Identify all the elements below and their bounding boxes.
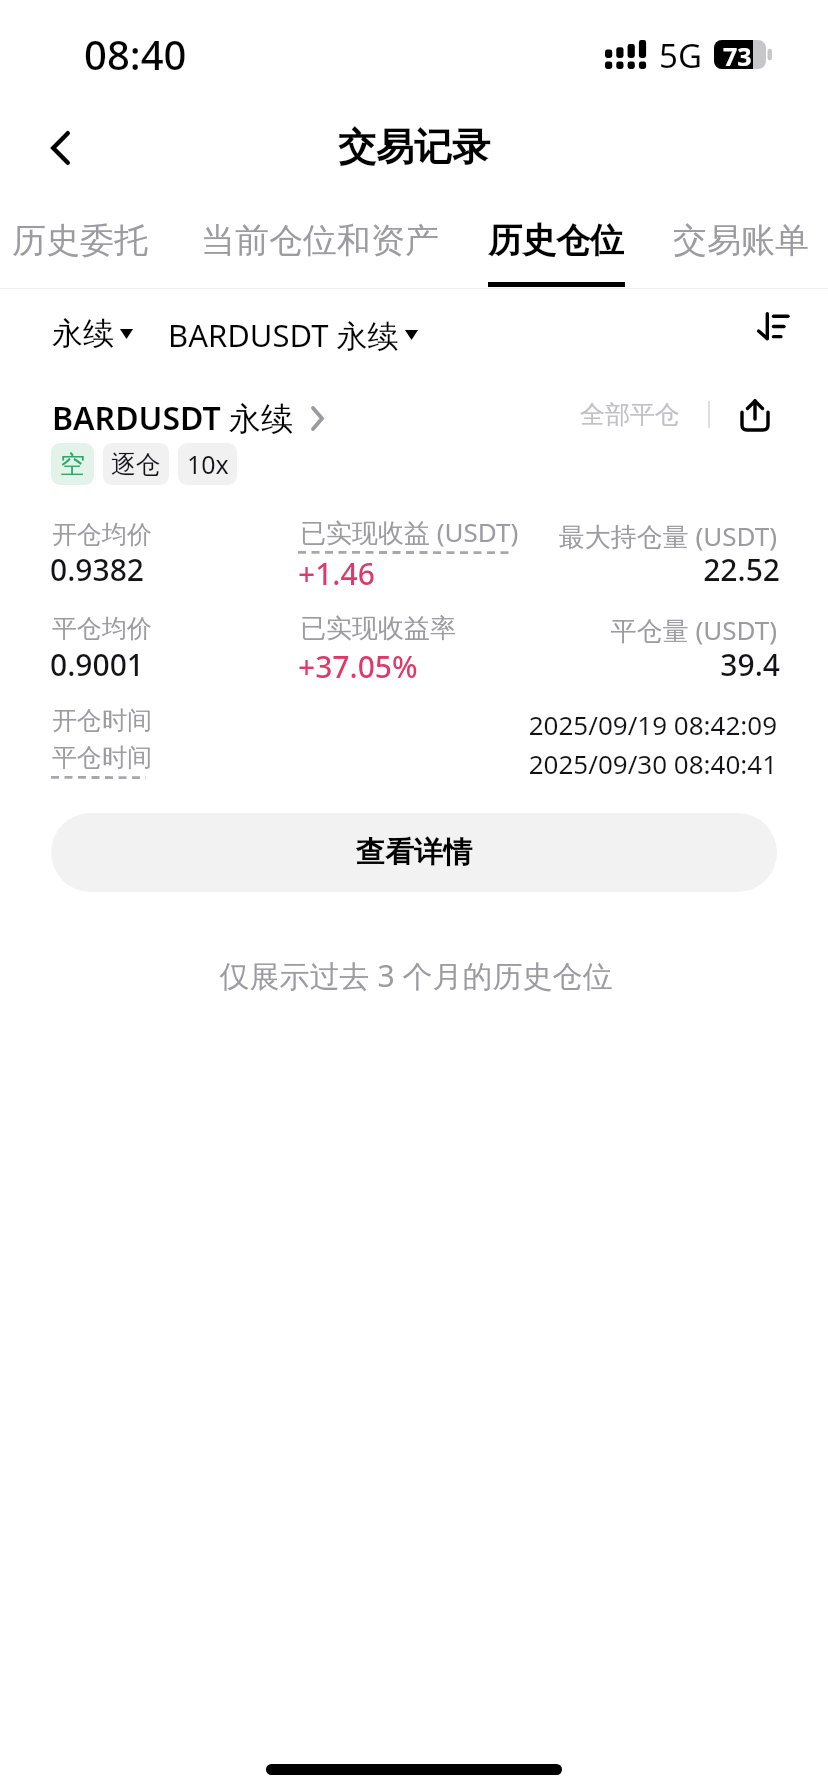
staticText: 0.9382: [50, 549, 144, 590]
staticText: +37.05%: [298, 646, 418, 687]
staticText: 开仓时间: [52, 705, 152, 736]
staticText: 历史仓位: [488, 219, 624, 262]
staticText: 平仓均价: [52, 613, 152, 644]
staticText: 平仓量 (USDT): [477, 612, 777, 648]
staticText: 交易记录: [338, 123, 490, 171]
staticText: 73: [723, 40, 752, 68]
button[interactable]: 历史仓位: [476, 200, 636, 289]
button[interactable]: 交易账单: [658, 200, 824, 289]
staticText: 空: [60, 449, 85, 480]
button[interactable]: 返回: [29, 117, 91, 179]
staticText: 永续: [52, 314, 114, 353]
staticText: 逐仓: [111, 449, 161, 480]
staticText: 0.9001: [50, 644, 144, 685]
button[interactable]: 永续: [38, 298, 147, 369]
button[interactable]: 排序: [747, 302, 799, 350]
button[interactable]: BARDUSDT 永续: [44, 388, 332, 448]
staticText: 10x: [187, 447, 229, 481]
staticText: 平仓时间: [52, 742, 152, 773]
staticText: 全部平仓: [580, 399, 680, 430]
staticText: 2025/09/30 08:40:41: [477, 746, 777, 781]
staticText: 交易账单: [673, 219, 809, 262]
staticText: BARDUSDT 永续: [168, 314, 399, 356]
button[interactable]: 全部平仓: [568, 387, 692, 442]
staticText: 仅展示过去 3 个月的历史仓位: [2, 955, 828, 996]
staticText: 39.4: [480, 644, 780, 685]
staticText: +1.46: [298, 553, 375, 594]
button[interactable]: 当前仓位和资产: [175, 200, 465, 289]
staticText: 08:40: [84, 27, 187, 81]
staticText: 历史委托: [12, 219, 148, 262]
staticText: 查看详情: [356, 834, 472, 871]
staticText: 已实现收益 (USDT): [300, 514, 519, 550]
staticText: 开仓均价: [52, 519, 152, 550]
staticText: 5G: [659, 33, 702, 78]
button[interactable]: 历史委托: [0, 200, 160, 289]
staticText: 最大持仓量 (USDT): [477, 518, 777, 554]
staticText: BARDUSDT 永续: [52, 396, 294, 440]
button[interactable]: 查看详情: [51, 813, 777, 892]
staticText: 已实现收益率: [300, 612, 456, 645]
staticText: 当前仓位和资产: [201, 219, 439, 262]
button[interactable]: 分享: [730, 391, 780, 439]
staticText: 22.52: [480, 549, 780, 590]
staticText: 2025/09/19 08:42:09: [477, 707, 777, 742]
button[interactable]: BARDUSDT 永续: [154, 298, 432, 372]
